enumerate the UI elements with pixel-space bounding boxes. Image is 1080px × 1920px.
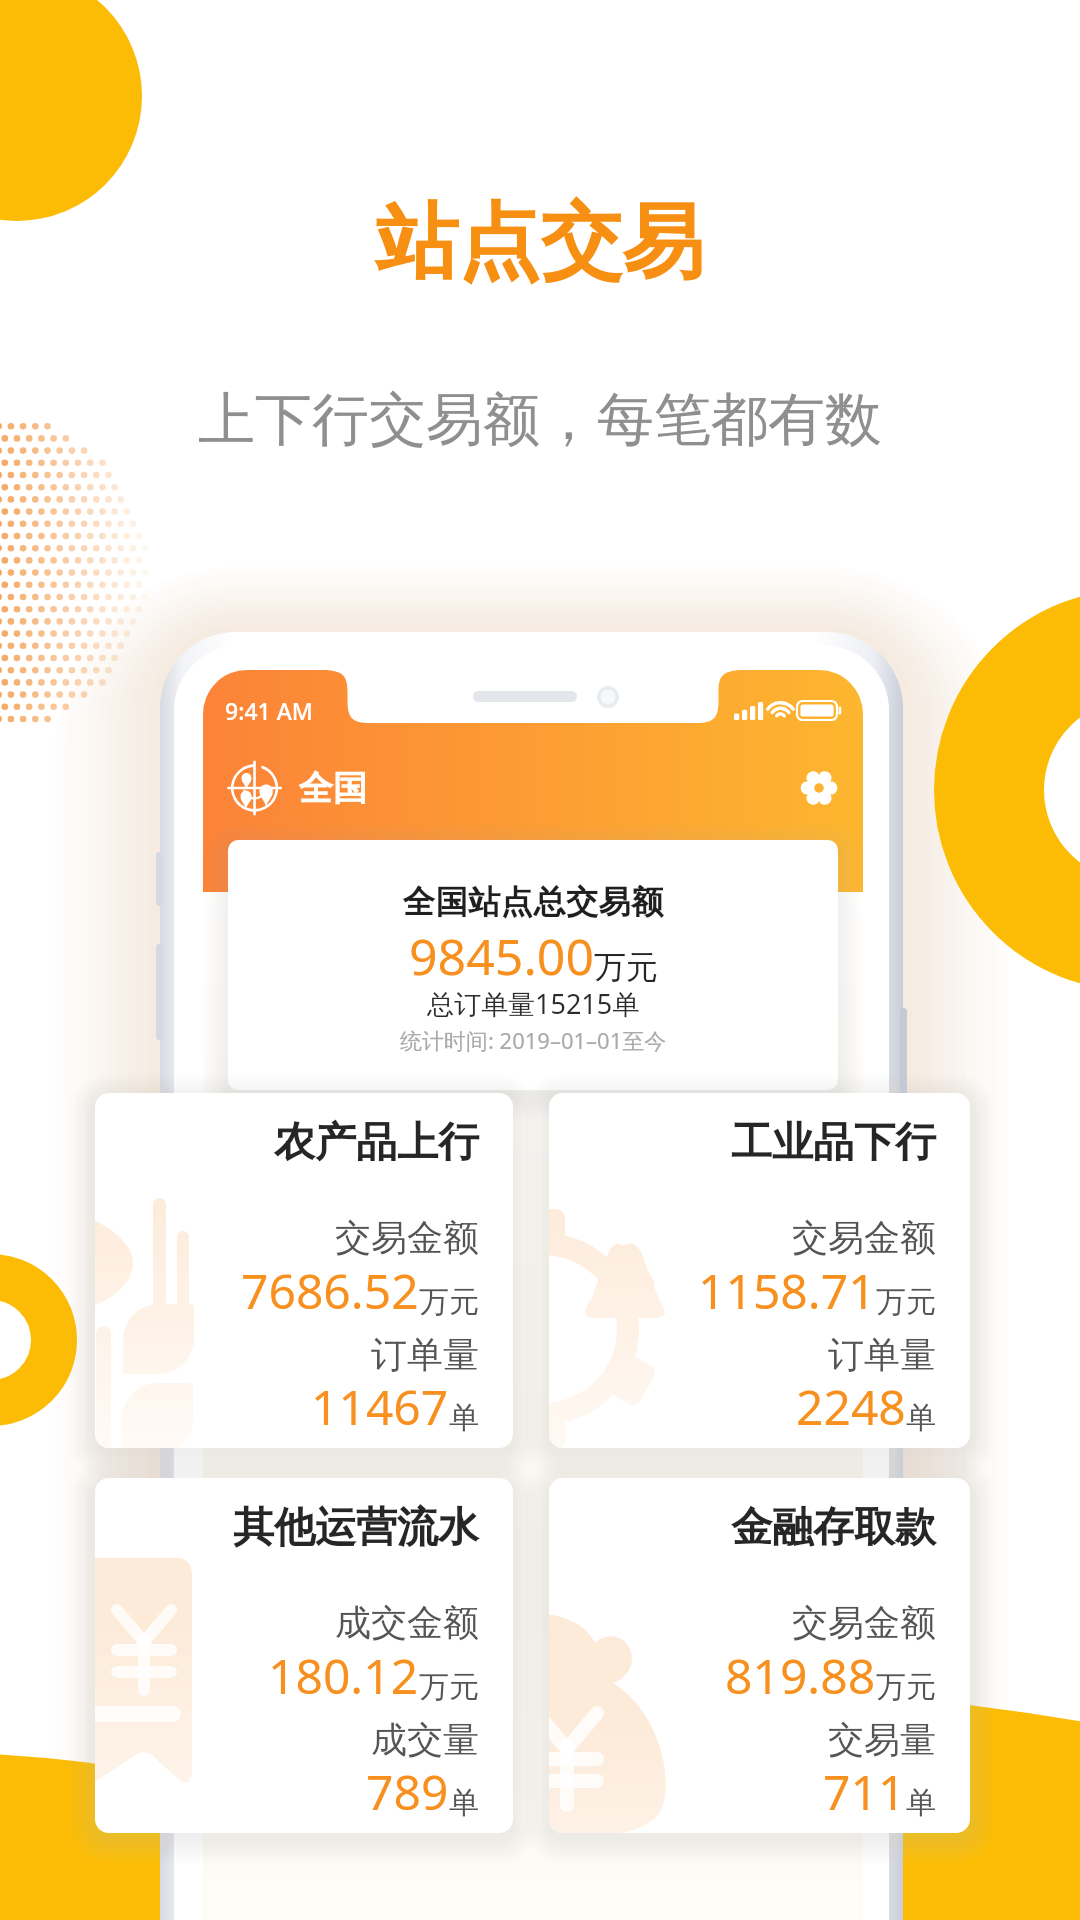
staticText: 9:41 AM bbox=[225, 695, 313, 726]
staticText: 万元 bbox=[876, 1283, 936, 1321]
button[interactable]: Settings bbox=[796, 765, 842, 811]
staticText: 9845.00 bbox=[409, 922, 594, 990]
staticText: 农产品上行 bbox=[274, 1117, 479, 1169]
staticText: 金融存取款 bbox=[731, 1502, 936, 1554]
button[interactable]: 全国站点总交易额 bbox=[228, 840, 838, 1090]
staticText: 上下行交易额，每笔都有数 bbox=[198, 384, 882, 456]
staticText: 工业品下行 bbox=[731, 1117, 936, 1169]
staticText: 交易金额 bbox=[792, 1600, 936, 1645]
staticText: 万元 bbox=[876, 1668, 936, 1706]
staticText: 711 bbox=[823, 1759, 906, 1824]
staticText: 交易量 bbox=[828, 1717, 936, 1762]
staticText: 2248 bbox=[796, 1374, 906, 1439]
staticText: 单 bbox=[449, 1399, 479, 1437]
staticText: 单 bbox=[906, 1784, 936, 1822]
staticText: 成交量 bbox=[371, 1717, 479, 1762]
staticText: 万元 bbox=[419, 1668, 479, 1706]
button[interactable]: 其他运营流水 bbox=[95, 1478, 513, 1833]
staticText: 万元 bbox=[594, 947, 658, 987]
button[interactable]: 金融存取款 bbox=[549, 1478, 970, 1833]
staticText: 单 bbox=[449, 1784, 479, 1822]
staticText: 万元 bbox=[419, 1283, 479, 1321]
staticText: 全国 bbox=[299, 767, 367, 810]
staticText: 819.88 bbox=[725, 1643, 876, 1708]
staticText: 789 bbox=[366, 1759, 449, 1824]
staticText: 其他运营流水 bbox=[233, 1502, 479, 1554]
staticText: 订单量 bbox=[371, 1332, 479, 1377]
staticText: 7686.52 bbox=[241, 1258, 419, 1323]
staticText: 11467 bbox=[311, 1374, 449, 1439]
staticText: 订单量 bbox=[828, 1332, 936, 1377]
staticText: 总订单量15215单 bbox=[427, 985, 640, 1022]
staticText: 成交金额 bbox=[335, 1600, 479, 1645]
staticText: 统计时间: 2019–01–01至今 bbox=[400, 1025, 667, 1055]
staticText: 全国站点总交易额 bbox=[403, 882, 664, 922]
button[interactable]: 工业品下行 bbox=[549, 1093, 970, 1448]
staticText: 1158.71 bbox=[698, 1258, 876, 1323]
button[interactable]: 农产品上行 bbox=[95, 1093, 513, 1448]
staticText: 单 bbox=[906, 1399, 936, 1437]
staticText: 180.12 bbox=[268, 1643, 419, 1708]
staticText: 站点交易 bbox=[376, 191, 704, 294]
button[interactable]: 全国 bbox=[227, 759, 367, 817]
staticText: 交易金额 bbox=[792, 1215, 936, 1260]
staticText: 交易金额 bbox=[335, 1215, 479, 1260]
